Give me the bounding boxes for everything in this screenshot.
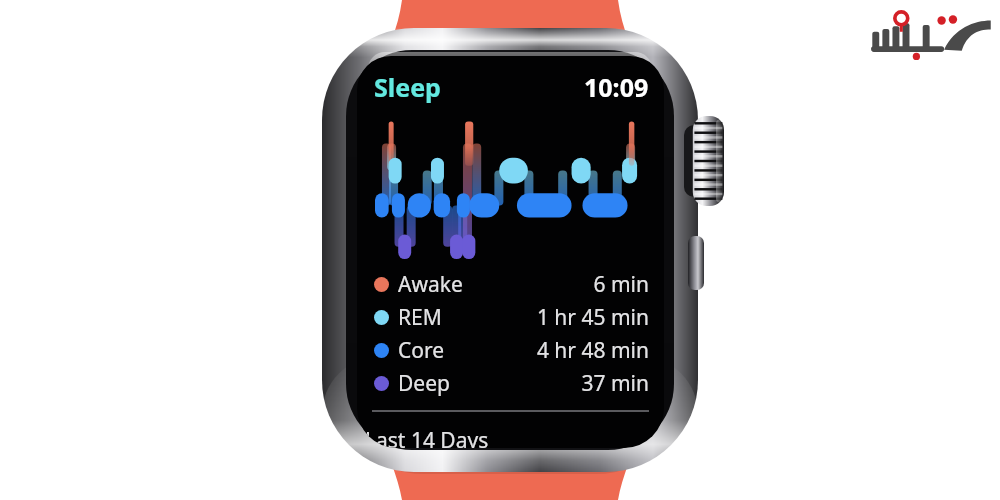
- staticText: Deep: [398, 369, 450, 398]
- staticText: 37 min: [581, 369, 649, 398]
- button[interactable]: Core: [357, 334, 664, 367]
- staticText: 4 hr 48 min: [536, 336, 649, 365]
- button[interactable]: Deep: [357, 367, 664, 400]
- button[interactable]: Awake: [357, 268, 664, 301]
- staticText: Awake: [398, 270, 463, 299]
- staticText: Sleep: [374, 70, 441, 104]
- button[interactable]: Sleep stages chart: [357, 114, 664, 262]
- staticText: Last 14 Days: [365, 426, 489, 448]
- button[interactable]: REM: [357, 301, 664, 334]
- staticText: Core: [398, 336, 445, 365]
- staticText: 10:09: [584, 70, 649, 104]
- button[interactable]: Digital Crown: [684, 116, 724, 206]
- button[interactable]: Last 14 Days: [357, 426, 664, 448]
- staticText: 6 min: [593, 270, 649, 299]
- staticText: 1 hr 45 min: [536, 303, 649, 332]
- button[interactable]: Side button: [688, 236, 704, 290]
- staticText: REM: [398, 303, 442, 332]
